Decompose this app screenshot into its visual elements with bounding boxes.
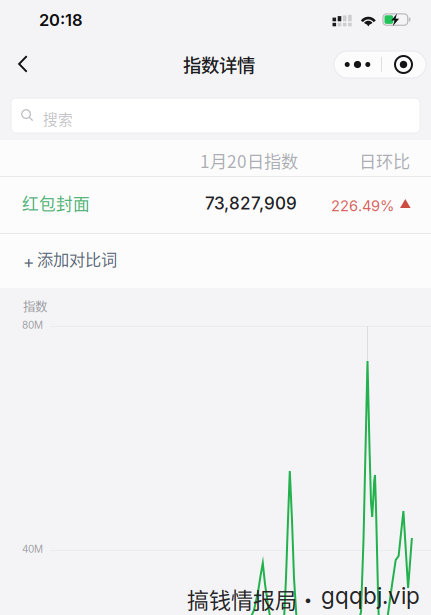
button[interactable]: More options bbox=[334, 51, 381, 78]
staticText: 80M bbox=[22, 319, 43, 331]
staticText: + bbox=[23, 251, 34, 272]
button[interactable]: 红包封面 bbox=[0, 177, 431, 233]
staticText: 搜索 bbox=[43, 108, 73, 129]
staticText: 40M bbox=[22, 543, 43, 555]
button[interactable]: + bbox=[0, 234, 431, 288]
staticText: 73,827,909 bbox=[205, 193, 297, 214]
staticText: 指数详情 bbox=[183, 51, 255, 78]
staticText: 226.49% bbox=[331, 197, 394, 215]
staticText: 1月20日指数 bbox=[200, 148, 298, 173]
staticText: 指数 bbox=[23, 297, 47, 315]
staticText: 搞钱情报局· bbox=[187, 583, 319, 615]
button[interactable]: Back bbox=[0, 40, 46, 88]
staticText: 日环比 bbox=[359, 148, 410, 173]
button[interactable]: Close mini program bbox=[381, 51, 426, 78]
staticText: 添加对比词 bbox=[37, 247, 117, 271]
staticText: 20:18 bbox=[39, 10, 83, 30]
staticText: gqqbj.vip bbox=[321, 582, 420, 609]
staticText: 红包封面 bbox=[22, 191, 90, 215]
button[interactable]: 搜索 bbox=[11, 98, 420, 133]
